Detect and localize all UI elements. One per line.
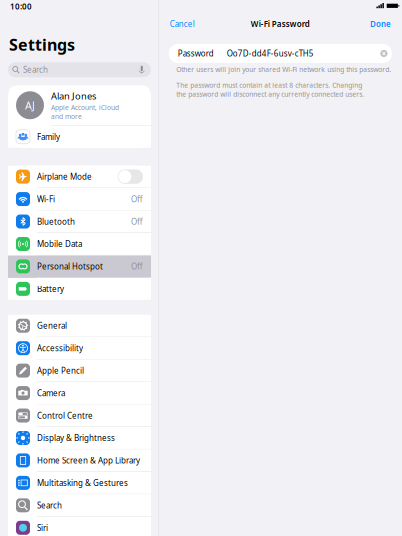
staticText: Search <box>23 64 48 75</box>
staticText: Off <box>131 261 143 272</box>
button[interactable]: General <box>8 315 151 337</box>
button[interactable]: Camera <box>8 382 151 405</box>
staticText: Multitasking & Gestures <box>37 478 128 488</box>
staticText: Off <box>131 216 143 227</box>
staticText: and more <box>51 112 82 121</box>
button[interactable]: Multitasking & Gestures <box>8 472 151 494</box>
button[interactable]: Battery <box>8 278 151 300</box>
staticText: Off <box>131 194 143 204</box>
staticText: Cancel <box>170 19 195 29</box>
button[interactable]: Search <box>8 494 151 517</box>
button[interactable]: Personal Hotspot <box>8 255 151 278</box>
button[interactable]: Cancel <box>167 15 198 33</box>
staticText: Bluetooth <box>37 216 75 227</box>
button[interactable]: Done <box>367 15 394 33</box>
staticText: Password <box>178 48 214 59</box>
staticText: Family <box>37 131 60 142</box>
button[interactable]: Siri <box>8 517 151 536</box>
staticText: Mobile Data <box>37 239 82 249</box>
button[interactable]: Wi-Fi <box>8 188 151 211</box>
staticText: Siri <box>37 522 48 533</box>
staticText: Control Centre <box>37 410 93 421</box>
staticText: Search <box>37 500 62 511</box>
staticText: Personal Hotspot <box>37 261 103 272</box>
button[interactable]: Display & Brightness <box>8 427 151 449</box>
staticText: Settings <box>9 34 75 55</box>
staticText: Alan Jones <box>51 90 96 102</box>
button[interactable]: AJ <box>8 85 151 125</box>
staticText: Apple Account, iCloud <box>51 103 119 112</box>
button[interactable]: Airplane Mode <box>8 166 151 188</box>
staticText: The password must contain at least 8 cha… <box>176 81 364 99</box>
button[interactable]: Family <box>8 126 151 148</box>
button[interactable]: Bluetooth <box>8 211 151 233</box>
button[interactable]: Mobile Data <box>8 233 151 255</box>
staticText: 10:00 <box>10 1 32 12</box>
button[interactable]: Accessibility <box>8 337 151 360</box>
button[interactable]: Control Centre <box>8 405 151 427</box>
staticText: Other users will join your shared Wi-Fi … <box>176 65 391 74</box>
staticText: Wi-Fi <box>37 194 55 204</box>
staticText: Home Screen & App Library <box>37 455 140 466</box>
staticText: Oo7D-dd4F-6usv-cTH5 <box>227 48 314 59</box>
staticText: General <box>37 320 67 331</box>
staticText: Battery <box>37 284 64 294</box>
button[interactable]: Apple Pencil <box>8 360 151 382</box>
staticText: Camera <box>37 388 65 398</box>
staticText: Wi-Fi Password <box>251 19 310 29</box>
button[interactable]: Home Screen & App Library <box>8 449 151 472</box>
staticText: Done <box>370 19 391 29</box>
staticText: Display & Brightness <box>37 433 115 443</box>
staticText: AJ <box>25 98 35 112</box>
staticText: Airplane Mode <box>37 171 92 182</box>
staticText: Accessibility <box>37 343 83 353</box>
staticText: Apple Pencil <box>37 365 84 376</box>
button[interactable]: Clear text <box>380 50 387 57</box>
